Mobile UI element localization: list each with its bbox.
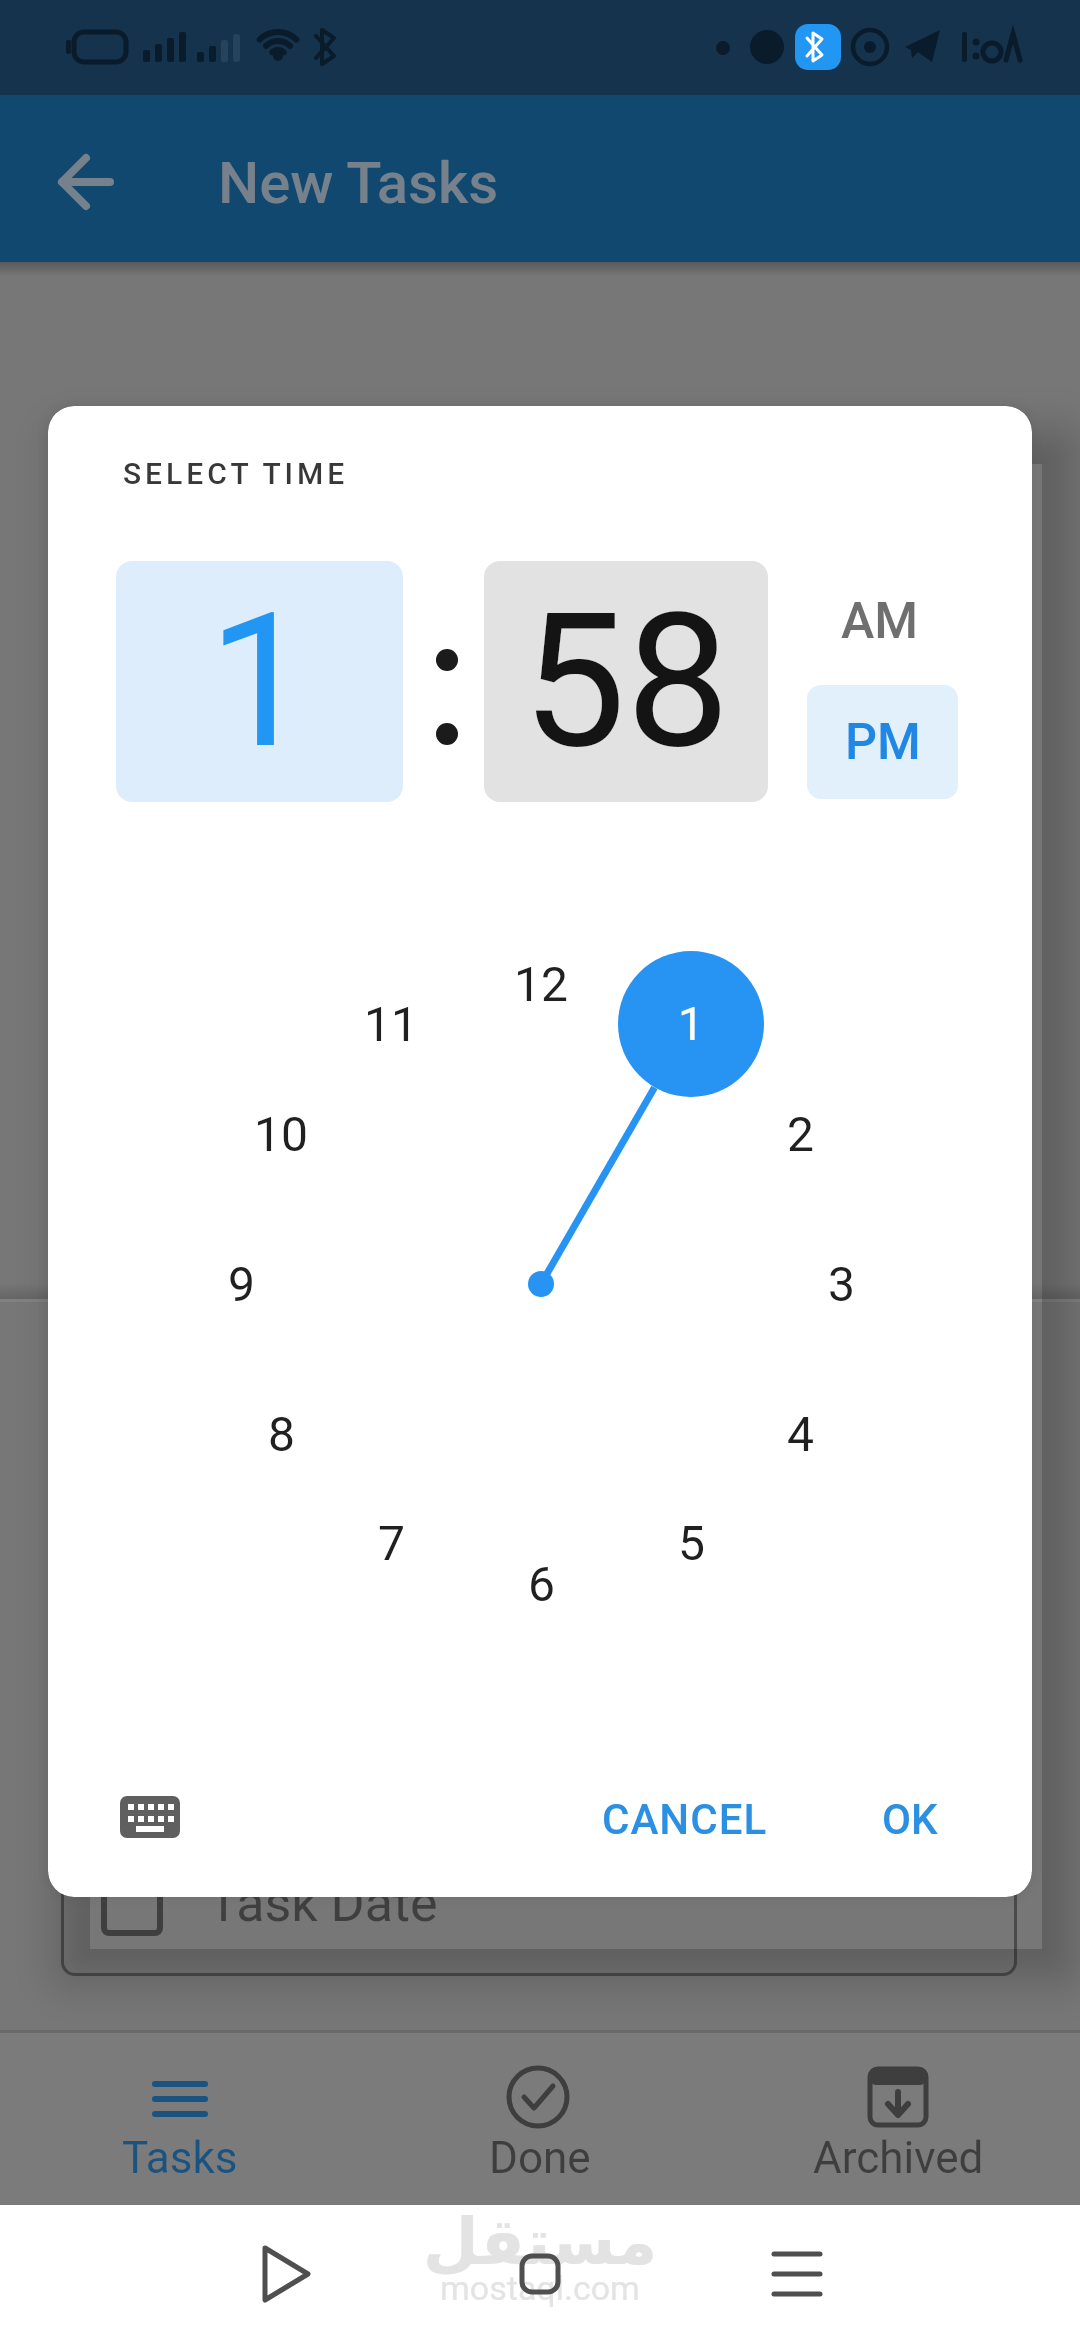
staticText: 8 bbox=[268, 1406, 295, 1462]
staticText: SELECT TIME bbox=[123, 456, 349, 491]
button[interactable] bbox=[490, 2224, 590, 2324]
staticText: 11 bbox=[364, 996, 418, 1052]
button[interactable] bbox=[818, 2040, 978, 2200]
staticText: mostaql.com bbox=[440, 2268, 640, 2308]
staticText: OK bbox=[882, 1795, 938, 1844]
staticText: 1 bbox=[678, 997, 704, 1051]
staticText: CANCEL bbox=[602, 1795, 768, 1844]
staticText: 12 bbox=[514, 956, 568, 1012]
button[interactable] bbox=[100, 1776, 200, 1858]
staticText: 5 bbox=[678, 1515, 705, 1571]
button[interactable]: AM bbox=[820, 591, 940, 651]
button[interactable] bbox=[100, 2040, 260, 2200]
staticText: Tasks bbox=[122, 2132, 238, 2184]
staticText: 9 bbox=[228, 1256, 255, 1312]
button[interactable]: OK bbox=[850, 1789, 970, 1849]
staticText: 1 bbox=[208, 573, 312, 790]
staticText: مستقل bbox=[423, 2205, 658, 2280]
staticText: 6 bbox=[528, 1556, 555, 1612]
staticText: AM bbox=[841, 592, 919, 651]
button[interactable]: 1 bbox=[116, 561, 403, 802]
staticText: Task Date bbox=[208, 1873, 438, 1934]
staticText: 10 bbox=[254, 1106, 308, 1162]
button[interactable]: CANCEL bbox=[595, 1789, 775, 1849]
staticText: Archived bbox=[813, 2132, 984, 2184]
staticText: 7 bbox=[378, 1515, 405, 1571]
staticText: 2 bbox=[787, 1106, 814, 1162]
staticText: New Tasks bbox=[218, 149, 499, 213]
button[interactable]: PM bbox=[807, 685, 958, 799]
staticText: PM bbox=[845, 713, 921, 772]
button[interactable] bbox=[747, 2224, 847, 2324]
staticText: 58 bbox=[522, 573, 730, 790]
staticText: 4 bbox=[787, 1406, 814, 1462]
staticText: Done bbox=[489, 2132, 591, 2184]
button[interactable] bbox=[460, 2040, 620, 2200]
staticText: 3 bbox=[828, 1256, 855, 1312]
button[interactable] bbox=[52, 146, 122, 216]
button[interactable] bbox=[233, 2224, 333, 2324]
button[interactable]: 58 bbox=[484, 561, 768, 802]
